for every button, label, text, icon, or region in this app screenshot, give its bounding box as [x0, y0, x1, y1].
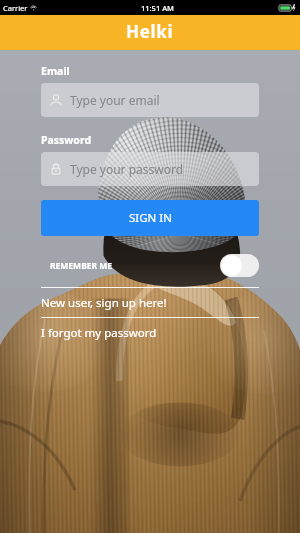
staticText: Helki — [126, 20, 174, 43]
button[interactable]: New user, sign up here! — [41, 288, 259, 317]
staticText: REMEMBER ME — [50, 260, 113, 272]
staticText: I forgot my password — [41, 325, 157, 341]
button[interactable]: Type your email — [41, 83, 259, 117]
staticText: Carrier — [3, 3, 28, 13]
button[interactable]: SIGN IN — [41, 200, 259, 236]
staticText: 11:51 AM — [141, 3, 174, 13]
button[interactable]: Remember me toggle — [220, 254, 259, 277]
button[interactable]: I forgot my password — [41, 318, 259, 347]
staticText: Password — [41, 133, 92, 147]
staticText: New user, sign up here! — [41, 295, 167, 311]
staticText: Type your email — [70, 92, 160, 108]
staticText: Email — [41, 64, 70, 78]
staticText: SIGN IN — [129, 210, 172, 226]
button[interactable]: Type your password — [41, 152, 259, 186]
staticText: Type your password — [70, 161, 184, 177]
